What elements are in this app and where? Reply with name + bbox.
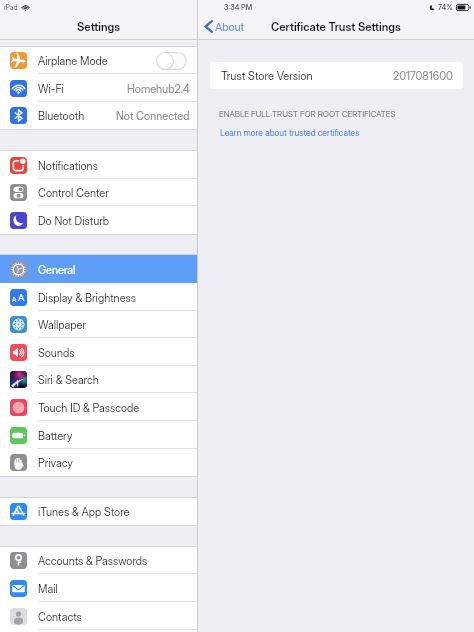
staticText: A	[18, 292, 25, 304]
staticText: Contacts	[38, 610, 82, 623]
button[interactable]: Privacy	[0, 449, 197, 476]
button[interactable]: A	[0, 283, 197, 311]
staticText: Siri & Search	[38, 373, 99, 386]
button[interactable]: iTunes & App Store	[0, 498, 197, 525]
staticText: About	[215, 20, 244, 33]
staticText: General	[38, 263, 76, 276]
button[interactable]: Touch ID & Passcode	[0, 393, 197, 421]
staticText: Settings	[77, 20, 121, 34]
button[interactable]: Trust Store Version	[210, 62, 463, 89]
staticText: 3:34 PM	[224, 3, 253, 12]
staticText: Wallpaper	[38, 318, 86, 331]
button[interactable]: Battery	[0, 421, 197, 449]
staticText: Touch ID & Passcode	[38, 401, 140, 414]
button[interactable]: Sounds	[0, 338, 197, 366]
staticText: iPad	[4, 3, 18, 12]
button[interactable]: Back to About	[204, 20, 244, 33]
button[interactable]: Wi-Fi	[0, 74, 197, 102]
staticText: Battery	[38, 429, 73, 442]
staticText: 2017081600	[393, 69, 453, 82]
button[interactable]: Control Center	[0, 179, 197, 206]
staticText: Display & Brightness	[38, 291, 137, 304]
staticText: Bluetooth	[38, 109, 85, 122]
staticText: A	[12, 296, 17, 304]
button[interactable]: Wallpaper	[0, 311, 197, 338]
button[interactable]: Notifications	[0, 151, 197, 179]
staticText: Homehub2.4	[127, 82, 190, 95]
staticText: 74%	[438, 3, 453, 12]
button[interactable]	[156, 52, 187, 70]
other: Back to About	[204, 20, 213, 33]
staticText: Control Center	[38, 186, 109, 199]
staticText: Sounds	[38, 346, 75, 359]
staticText: Airplane Mode	[38, 54, 108, 67]
staticText: iTunes & App Store	[38, 505, 130, 518]
button[interactable]: Contacts	[0, 602, 197, 630]
button[interactable]: Do Not Disturb	[0, 206, 197, 234]
button[interactable]: Bluetooth	[0, 102, 197, 129]
staticText: Wi-Fi	[38, 82, 64, 95]
button[interactable]: Learn more about trusted certificates	[220, 128, 360, 139]
button[interactable]: Siri & Search	[0, 366, 197, 393]
button[interactable]: Accounts & Passwords	[0, 547, 197, 574]
staticText: Trust Store Version	[221, 69, 313, 82]
button[interactable]: Mail	[0, 574, 197, 602]
staticText: Not Connected	[116, 109, 190, 122]
button[interactable]: Airplane Mode	[0, 47, 197, 74]
staticText: Privacy	[38, 456, 73, 469]
staticText: Certificate Trust Settings	[271, 20, 401, 34]
staticText: ENABLE FULL TRUST FOR ROOT CERTIFICATES	[219, 109, 396, 119]
staticText: Accounts & Passwords	[38, 554, 148, 567]
staticText: Mail	[38, 582, 58, 595]
button[interactable]: General	[0, 255, 197, 283]
staticText: Do Not Disturb	[38, 214, 109, 227]
staticText: Notifications	[38, 159, 98, 172]
